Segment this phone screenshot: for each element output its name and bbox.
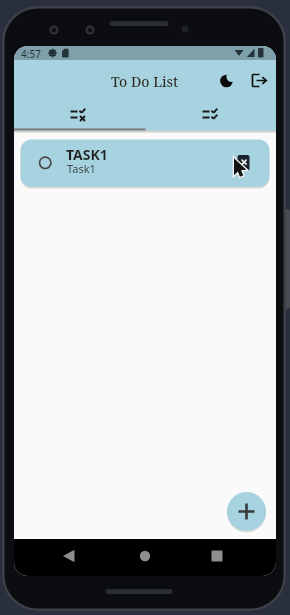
button[interactable] <box>203 544 231 568</box>
staticText: 4:57 <box>21 47 41 61</box>
staticText: TASK1 <box>66 145 108 164</box>
staticText: To Do List <box>111 72 179 91</box>
button[interactable] <box>20 139 269 187</box>
button[interactable] <box>215 69 239 93</box>
button[interactable] <box>14 97 145 131</box>
staticText: Task1 <box>67 161 96 176</box>
button[interactable] <box>131 544 159 568</box>
button[interactable] <box>55 544 83 568</box>
button[interactable] <box>145 97 276 131</box>
button[interactable] <box>234 150 254 174</box>
button[interactable] <box>226 490 267 531</box>
button[interactable] <box>248 69 272 93</box>
